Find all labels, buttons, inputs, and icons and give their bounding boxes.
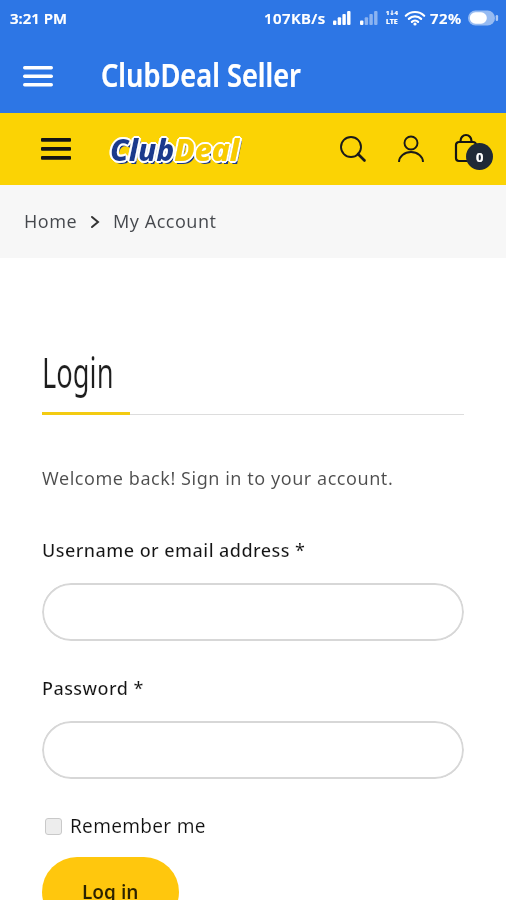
staticText: 0 <box>476 148 484 166</box>
staticText: Welcome back! Sign in to your account. <box>42 466 394 491</box>
staticText: Password * <box>42 676 144 701</box>
staticText: ClubDeal <box>108 129 238 170</box>
staticText: ClubDeal <box>111 128 241 169</box>
staticText: 107KB/s <box>264 8 326 28</box>
staticText: ClubDeal <box>112 132 242 173</box>
staticText: 1↓4 <box>386 9 398 17</box>
button[interactable] <box>389 127 433 171</box>
button[interactable] <box>14 51 62 99</box>
staticText: ClubDeal <box>111 130 241 171</box>
button[interactable]: Log in <box>42 857 179 900</box>
staticText: Login <box>42 343 114 400</box>
staticText: Log in <box>82 879 139 900</box>
button[interactable]: 0 <box>442 123 494 175</box>
staticText: ClubDeal <box>110 127 240 168</box>
staticText: Username or email address * <box>42 538 306 563</box>
button[interactable] <box>42 721 464 779</box>
button[interactable]: Home <box>24 209 78 234</box>
staticText: 3:21 PM <box>10 8 67 28</box>
staticText: My Account <box>113 209 217 234</box>
staticText: LTE <box>386 17 398 27</box>
staticText: ClubDeal <box>110 129 240 170</box>
button[interactable] <box>34 127 78 171</box>
button[interactable]: Remember me <box>45 813 206 839</box>
staticText: Remember me <box>70 813 206 839</box>
staticText: ClubDeal <box>109 128 239 169</box>
staticText: 72% <box>430 8 462 28</box>
staticText: ClubDeal <box>112 129 242 170</box>
staticText: ClubDeal Seller <box>101 53 302 97</box>
button[interactable] <box>42 583 464 641</box>
staticText: ClubDeal <box>110 131 240 172</box>
staticText: ClubDeal <box>109 130 239 171</box>
button[interactable] <box>331 127 375 171</box>
